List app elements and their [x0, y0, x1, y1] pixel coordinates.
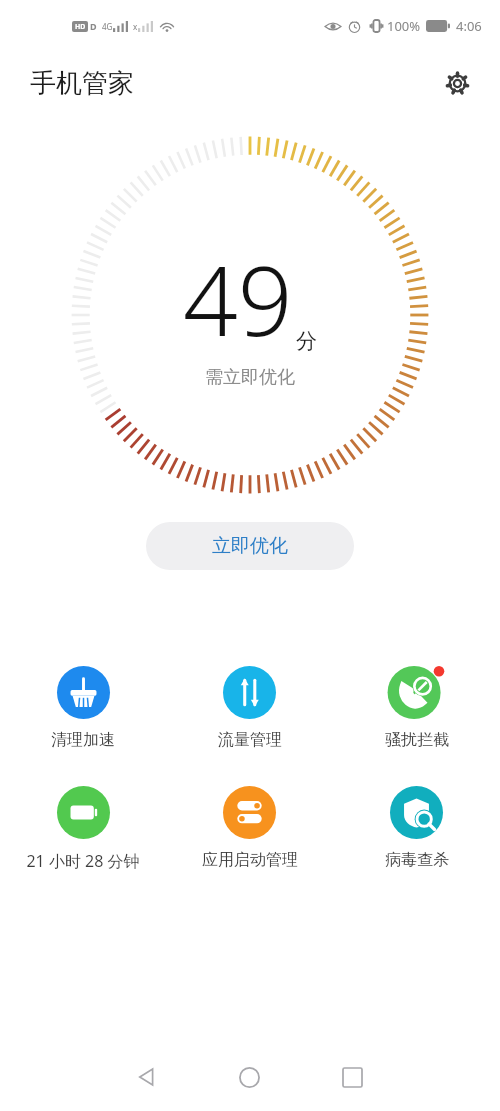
button[interactable]: 省电管理	[0, 782, 166, 876]
other: 病毒查杀	[390, 786, 443, 839]
button[interactable]: 病毒查杀	[333, 782, 500, 874]
staticText: 100%	[387, 17, 421, 35]
button[interactable]: 立即优化	[146, 522, 354, 570]
staticText: 清理加速	[51, 730, 115, 750]
button[interactable]: 清理加速	[0, 662, 166, 754]
other: 应用启动管理	[223, 786, 276, 839]
button[interactable]: 应用启动管理	[166, 782, 333, 874]
button[interactable]: Recent apps	[301, 1053, 404, 1101]
button[interactable]: 骚扰拦截	[333, 662, 500, 754]
staticText: 立即优化	[212, 534, 288, 558]
staticText: 分	[296, 328, 317, 354]
staticText: 需立即优化	[205, 366, 295, 389]
staticText: 21 小时 28 分钟	[26, 850, 140, 872]
staticText: 4:06	[456, 17, 482, 35]
other: 流量管理	[223, 666, 276, 719]
staticText: D	[90, 20, 97, 32]
button[interactable]: Home	[198, 1053, 301, 1101]
staticText: 4G	[102, 21, 113, 32]
button[interactable]: 流量管理	[166, 662, 333, 754]
other: 清理加速	[57, 666, 110, 719]
staticText: 流量管理	[218, 730, 282, 750]
staticText: 骚扰拦截	[385, 730, 449, 750]
button[interactable]: Settings	[436, 62, 478, 104]
staticText: 病毒查杀	[385, 850, 449, 870]
staticText: x	[133, 21, 138, 32]
staticText: HD	[75, 22, 86, 32]
staticText: 49	[183, 233, 293, 364]
button[interactable]: Back	[96, 1053, 198, 1101]
other: 省电管理	[57, 786, 110, 839]
staticText: 手机管家	[30, 67, 134, 100]
other: 骚扰拦截	[386, 666, 448, 719]
staticText: 应用启动管理	[202, 850, 298, 870]
